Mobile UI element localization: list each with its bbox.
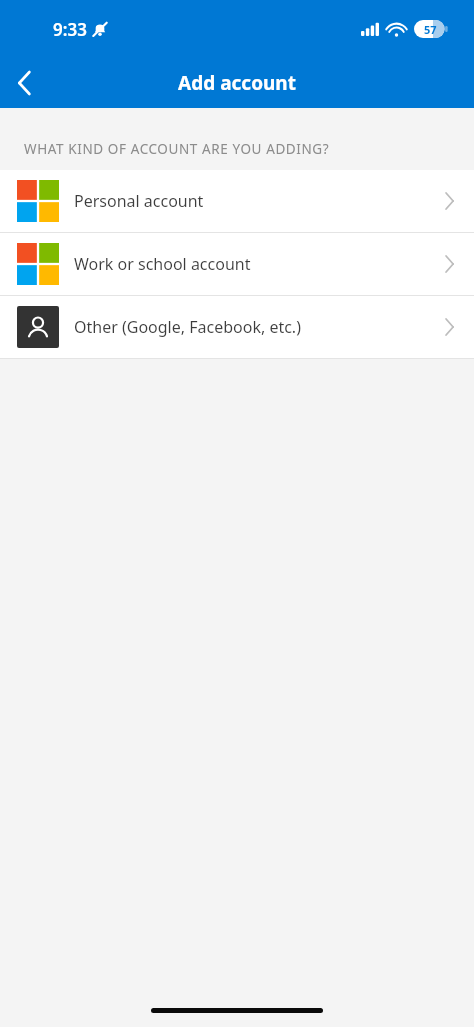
button[interactable]: Back (0, 58, 48, 108)
staticText: 9:33 (53, 18, 87, 41)
staticText: Other (Google, Facebook, etc.) (74, 316, 445, 338)
staticText: WHAT KIND OF ACCOUNT ARE YOU ADDING? (24, 140, 330, 158)
button[interactable]: Personal account (0, 170, 474, 232)
staticText: Work or school account (74, 253, 445, 275)
staticText: Add account (178, 70, 296, 96)
staticText: Personal account (74, 190, 445, 212)
button[interactable]: Work or school account (0, 233, 474, 295)
staticText: 57 (424, 22, 437, 37)
button[interactable]: Other (Google, Facebook, etc.) (0, 296, 474, 358)
